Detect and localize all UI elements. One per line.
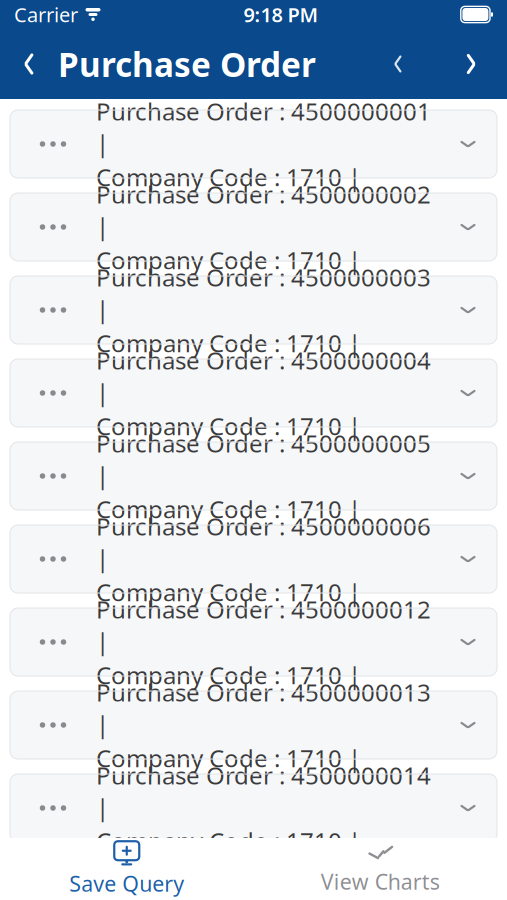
staticText: Purchase Order : 4500000002 | (96, 178, 431, 242)
staticText: Purchase Order : 4500000004 | (96, 344, 431, 408)
button[interactable]: Next (435, 34, 507, 94)
button[interactable]: Purchase Order : 4500000001 | (10, 110, 497, 178)
staticText: Purchase Order : 4500000005 | (96, 427, 431, 491)
button[interactable]: Purchase Order : 4500000013 | (10, 691, 497, 759)
button[interactable]: Purchase Order : 4500000012 | (10, 608, 497, 676)
staticText: View Charts (321, 867, 440, 896)
staticText: 9:18 PM (243, 1, 318, 28)
staticText: Company Code : 1710 | (96, 659, 361, 691)
button[interactable]: Back (0, 34, 58, 94)
button[interactable]: Save Query (0, 838, 253, 900)
staticText: Purchase Order : 4500000014 | (96, 759, 431, 823)
staticText: Company Code : 1710 | (96, 327, 361, 359)
staticText: Company Code : 1710 | (96, 493, 361, 525)
staticText: Purchase Order : 4500000013 | (96, 676, 431, 740)
button[interactable]: Purchase Order : 4500000003 | (10, 276, 497, 344)
staticText: Purchase Order : 4500000006 | (96, 510, 431, 574)
staticText: Company Code : 1710 | (96, 161, 361, 193)
staticText: Purchase Order (58, 42, 316, 86)
staticText: Carrier (14, 1, 78, 28)
staticText: Company Code : 1710 | (96, 576, 361, 608)
button[interactable]: Previous (361, 34, 435, 94)
button[interactable]: Purchase Order : 4500000002 | (10, 193, 497, 261)
button[interactable]: Purchase Order : 4500000004 | (10, 359, 497, 427)
staticText: Company Code : 1710 | (96, 410, 361, 442)
button[interactable]: View Charts (253, 838, 507, 900)
staticText: Save Query (69, 869, 184, 898)
staticText: Company Code : 1710 | (96, 244, 361, 276)
button[interactable]: Purchase Order : 4500000005 | (10, 442, 497, 510)
button[interactable]: Purchase Order : 4500000014 | (10, 774, 497, 842)
staticText: Purchase Order : 4500000012 | (96, 593, 431, 657)
button[interactable]: Purchase Order : 4500000006 | (10, 525, 497, 593)
staticText: Company Code : 1710 | (96, 825, 361, 857)
staticText: Purchase Order : 4500000003 | (96, 261, 431, 325)
staticText: Purchase Order : 4500000001 | (96, 95, 431, 159)
staticText: Company Code : 1710 | (96, 742, 361, 774)
